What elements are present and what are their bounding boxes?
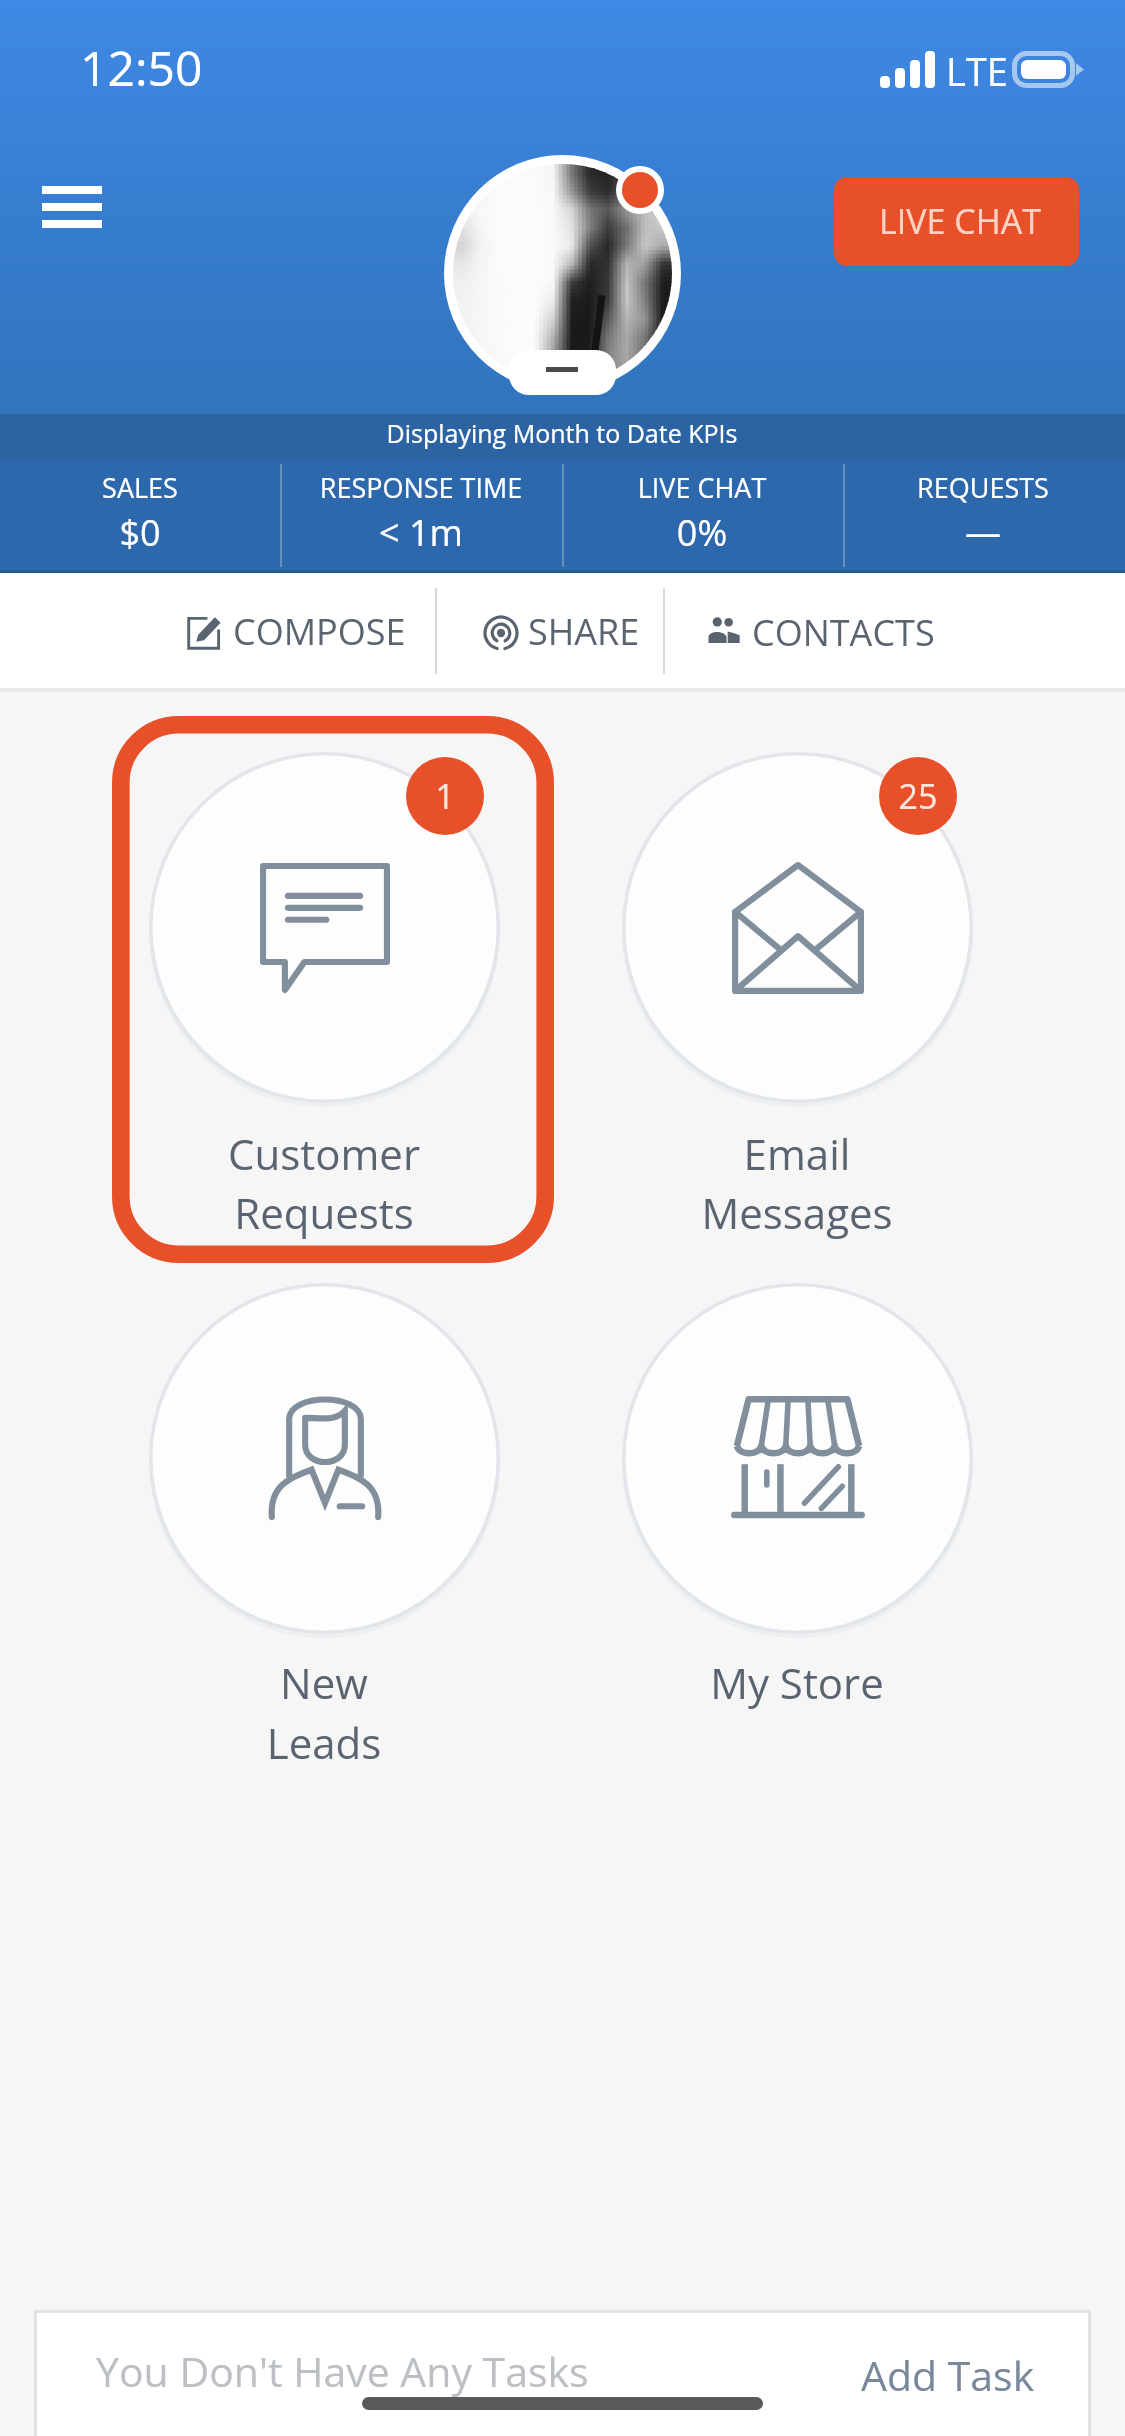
staticText: SHARE <box>528 607 640 656</box>
staticText: < 1m <box>121 508 721 557</box>
staticText: Customer <box>24 1125 624 1182</box>
button[interactable] <box>0 573 435 688</box>
staticText: Leads <box>24 1714 624 1771</box>
staticText: LIVE CHAT <box>402 469 1002 506</box>
button[interactable]: LIVE CHAT <box>834 177 1079 266</box>
button[interactable]: Profile photo <box>444 155 681 395</box>
staticText: 12:50 <box>80 35 203 100</box>
staticText: 0% <box>402 508 1002 557</box>
button[interactable] <box>435 573 663 688</box>
button[interactable]: 1 <box>406 757 484 835</box>
staticText: — <box>683 508 1125 557</box>
staticText: Displaying Month to Date KPIs <box>262 416 862 450</box>
staticText: You Don't Have Any Tasks <box>96 2343 589 2399</box>
staticText: CONTACTS <box>752 608 935 657</box>
button[interactable] <box>112 716 554 1263</box>
button[interactable] <box>663 573 1125 688</box>
button[interactable] <box>843 461 1123 570</box>
staticText: New <box>24 1654 624 1711</box>
button[interactable] <box>562 461 842 570</box>
button[interactable]: Menu <box>10 152 134 252</box>
staticText: $0 <box>0 508 440 557</box>
staticText: LTE <box>946 45 1008 97</box>
staticText: Messages <box>497 1184 1097 1241</box>
staticText: 25 <box>879 773 957 819</box>
staticText: SALES <box>0 469 440 506</box>
staticText: Email <box>497 1125 1097 1182</box>
staticText: Add Task <box>861 2347 1035 2403</box>
button[interactable] <box>0 461 280 570</box>
staticText: COMPOSE <box>233 607 406 656</box>
staticText: RESPONSE TIME <box>121 469 721 506</box>
button[interactable]: Open <box>622 1283 973 1634</box>
staticText: 1 <box>406 773 484 819</box>
staticText: LIVE CHAT <box>879 198 1041 244</box>
button[interactable] <box>281 461 561 570</box>
button[interactable]: Open <box>622 752 973 1103</box>
button[interactable]: Open <box>149 752 500 1103</box>
button[interactable]: Open <box>149 1283 500 1634</box>
staticText: REQUESTS <box>683 469 1125 506</box>
staticText: Requests <box>24 1184 624 1241</box>
staticText: My Store <box>497 1654 1097 1711</box>
button[interactable]: 25 <box>879 757 957 835</box>
button[interactable] <box>34 2310 1091 2436</box>
